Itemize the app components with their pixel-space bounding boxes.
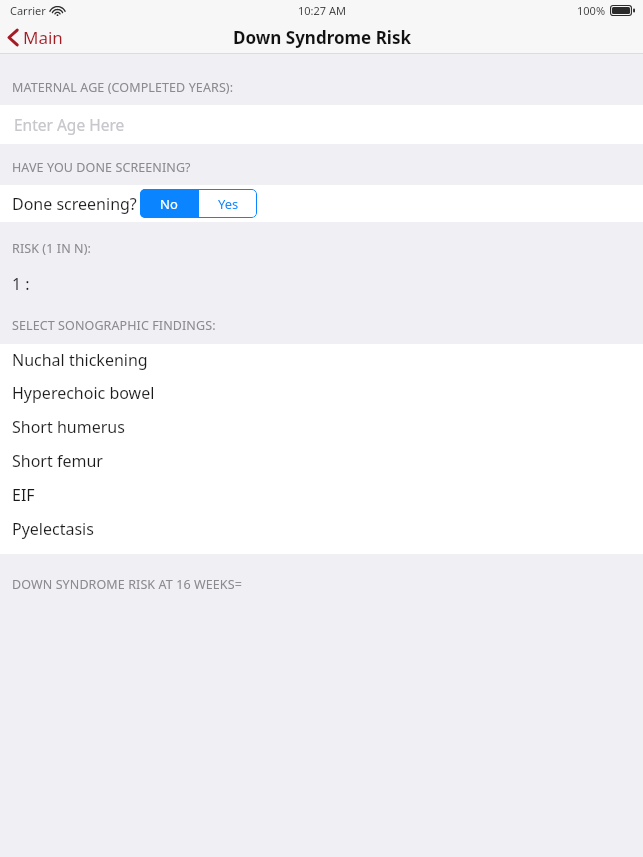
staticText: SELECT SONOGRAPHIC FINDINGS: [12,317,216,334]
staticText: Down Syndrome Risk [233,26,411,49]
button[interactable]: Enter Age Here [0,105,643,144]
staticText: Short femur [12,450,103,472]
staticText: 1 : [12,273,30,295]
staticText: Done screening? [12,193,137,215]
staticText: 100% [577,3,606,18]
staticText: MATERNAL AGE (COMPLETED YEARS): [12,79,234,96]
staticText: 10:27 AM [298,3,346,18]
button[interactable]: Pyelectasis [0,512,643,546]
staticText: Nuchal thickening [12,349,148,371]
staticText: Carrier [10,3,46,18]
staticText: Short humerus [12,416,125,438]
staticText: Pyelectasis [12,518,94,540]
staticText: Hyperechoic bowel [12,382,155,404]
staticText: DOWN SYNDROME RISK AT 16 WEEKS= [12,576,242,593]
button[interactable]: Main [0,22,73,53]
staticText: Enter Age Here [14,114,125,135]
button[interactable]: Short femur [0,444,643,478]
staticText: HAVE YOU DONE SCREENING? [12,159,191,176]
staticText: No [160,195,178,213]
staticText: RISK (1 IN N): [12,240,92,257]
button[interactable]: Hyperechoic bowel [0,376,643,410]
button[interactable]: Short humerus [0,410,643,444]
staticText: EIF [12,484,35,506]
staticText: Yes [218,195,239,213]
button[interactable]: No [140,189,198,218]
button[interactable]: Nuchal thickening [0,344,643,376]
button[interactable]: EIF [0,478,643,512]
button[interactable]: Yes [199,189,257,218]
staticText: Main [23,26,63,49]
